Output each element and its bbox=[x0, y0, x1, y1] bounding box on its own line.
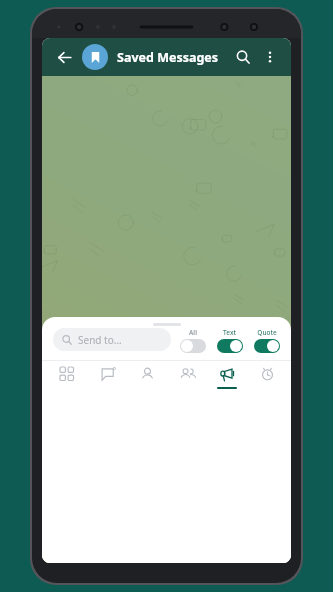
staticText: All bbox=[189, 328, 197, 337]
staticText: Text bbox=[223, 328, 236, 337]
button[interactable]: More options bbox=[257, 44, 283, 70]
button[interactable]: Text bbox=[214, 328, 245, 357]
button[interactable]: Contacts bbox=[127, 361, 167, 394]
button[interactable]: All bbox=[177, 328, 208, 357]
button[interactable]: Saved Messages avatar bbox=[82, 44, 108, 70]
staticText: Saved Messages bbox=[117, 49, 219, 66]
button[interactable]: Send to... bbox=[53, 328, 171, 351]
button[interactable]: Back bbox=[50, 43, 78, 71]
staticText: Quote bbox=[257, 328, 277, 337]
button[interactable]: Channels bbox=[87, 361, 127, 394]
button[interactable]: Apps bbox=[46, 361, 87, 394]
button[interactable]: Groups bbox=[167, 361, 207, 394]
button[interactable]: Broadcast bbox=[207, 361, 247, 394]
staticText: Send to... bbox=[78, 333, 122, 347]
button[interactable]: Bots bbox=[247, 361, 287, 394]
button[interactable]: Search bbox=[229, 43, 257, 71]
button[interactable]: Quote bbox=[251, 328, 282, 357]
